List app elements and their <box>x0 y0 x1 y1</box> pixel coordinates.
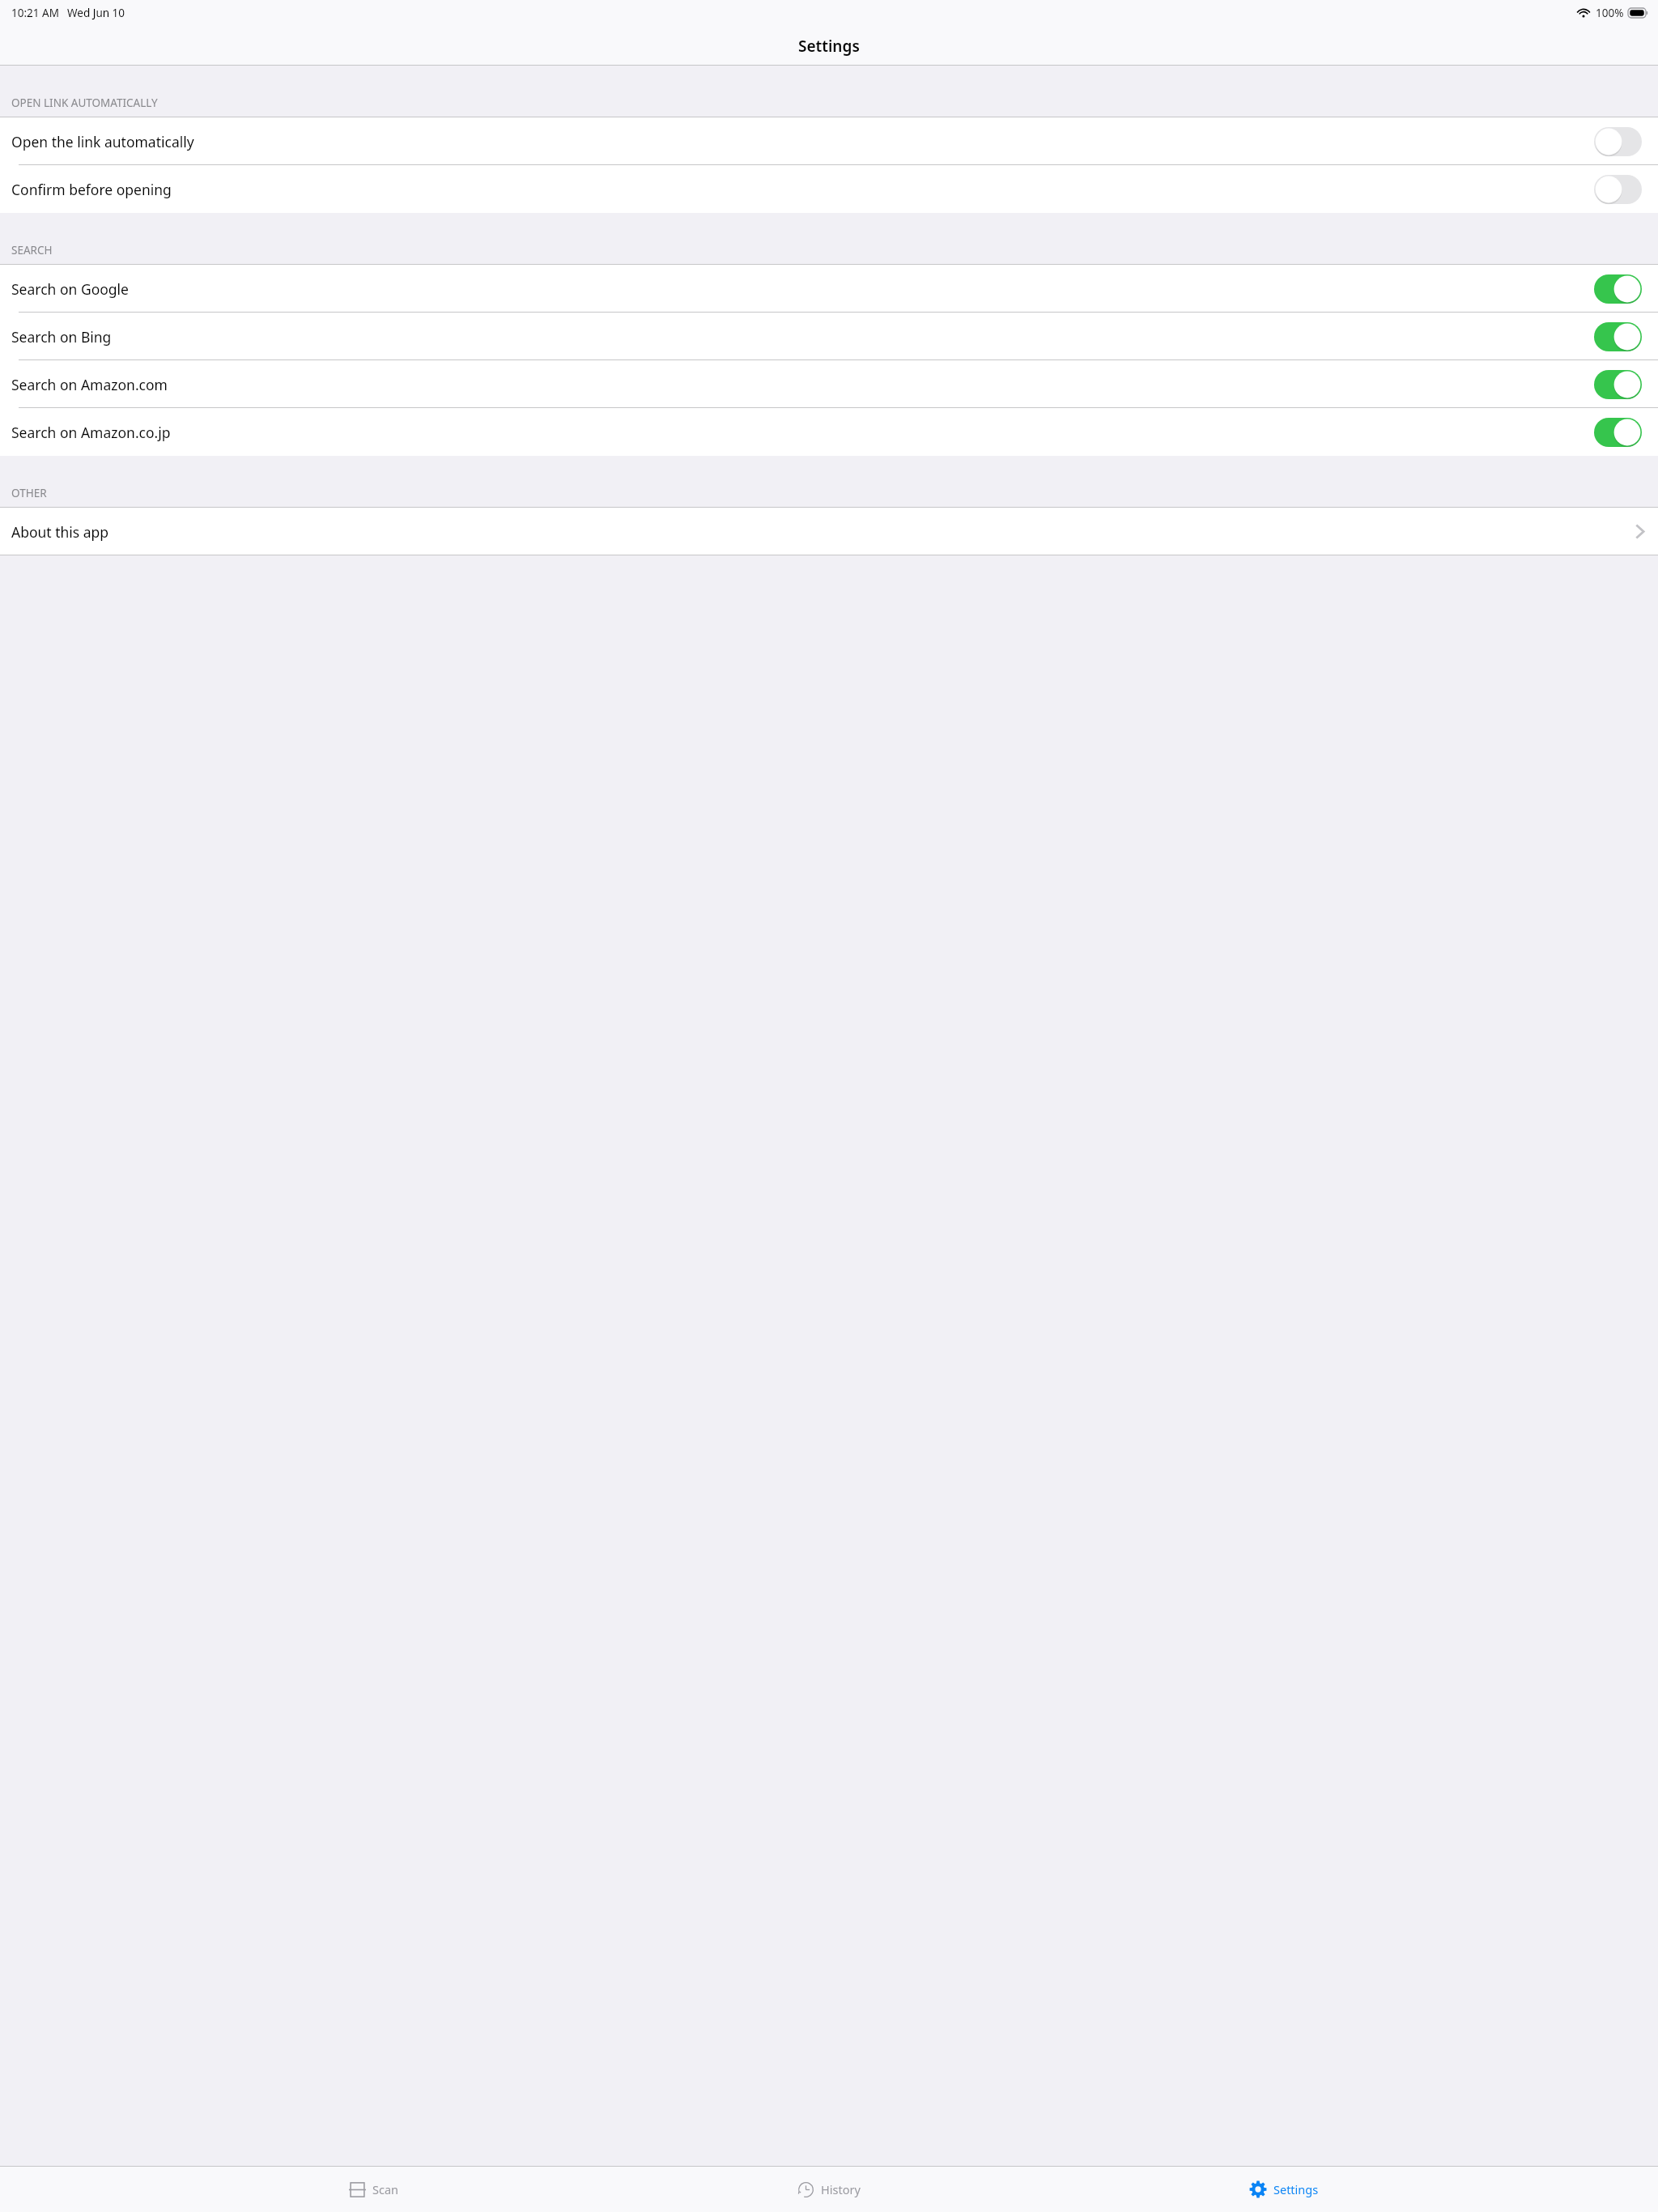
button[interactable]: About this app <box>0 508 1658 555</box>
button[interactable]: Open the link automatically <box>0 117 1658 165</box>
staticText: About this app <box>11 522 109 542</box>
staticText: Search on Amazon.co.jp <box>11 423 171 442</box>
staticText: Wed Jun 10 <box>67 6 125 20</box>
staticText: Search on Google <box>11 279 129 299</box>
staticText: Search on Bing <box>11 327 112 347</box>
staticText: OTHER <box>11 486 47 500</box>
other: Off <box>1594 127 1642 156</box>
staticText: Settings <box>798 36 860 57</box>
button[interactable]: Search on Amazon.co.jp <box>0 408 1658 456</box>
button[interactable]: Search on Amazon.com <box>0 360 1658 408</box>
staticText: SEARCH <box>11 243 53 257</box>
other: History <box>797 2181 814 2198</box>
button[interactable]: Search on Bing <box>0 313 1658 360</box>
staticText: Open the link automatically <box>11 132 194 151</box>
button[interactable]: Scan <box>293 2167 455 2212</box>
button[interactable]: History <box>748 2167 910 2212</box>
button[interactable]: Search on Google <box>0 265 1658 313</box>
other: On <box>1594 370 1642 399</box>
staticText: Settings <box>1273 2181 1319 2197</box>
other: On <box>1594 418 1642 447</box>
other: Scan <box>349 2181 366 2198</box>
staticText: 10:21 AM <box>11 6 59 20</box>
staticText: History <box>821 2181 861 2197</box>
other: Off <box>1594 175 1642 204</box>
button[interactable]: Settings <box>1203 2167 1365 2212</box>
other: On <box>1594 322 1642 351</box>
other: On <box>1594 274 1642 304</box>
staticText: Search on Amazon.com <box>11 375 168 394</box>
other: Settings <box>1249 2180 1267 2198</box>
staticText: Confirm before opening <box>11 180 172 199</box>
staticText: Scan <box>372 2181 399 2197</box>
staticText: 100% <box>1596 6 1624 20</box>
staticText: OPEN LINK AUTOMATICALLY <box>11 96 158 110</box>
button[interactable]: Confirm before opening <box>0 165 1658 213</box>
